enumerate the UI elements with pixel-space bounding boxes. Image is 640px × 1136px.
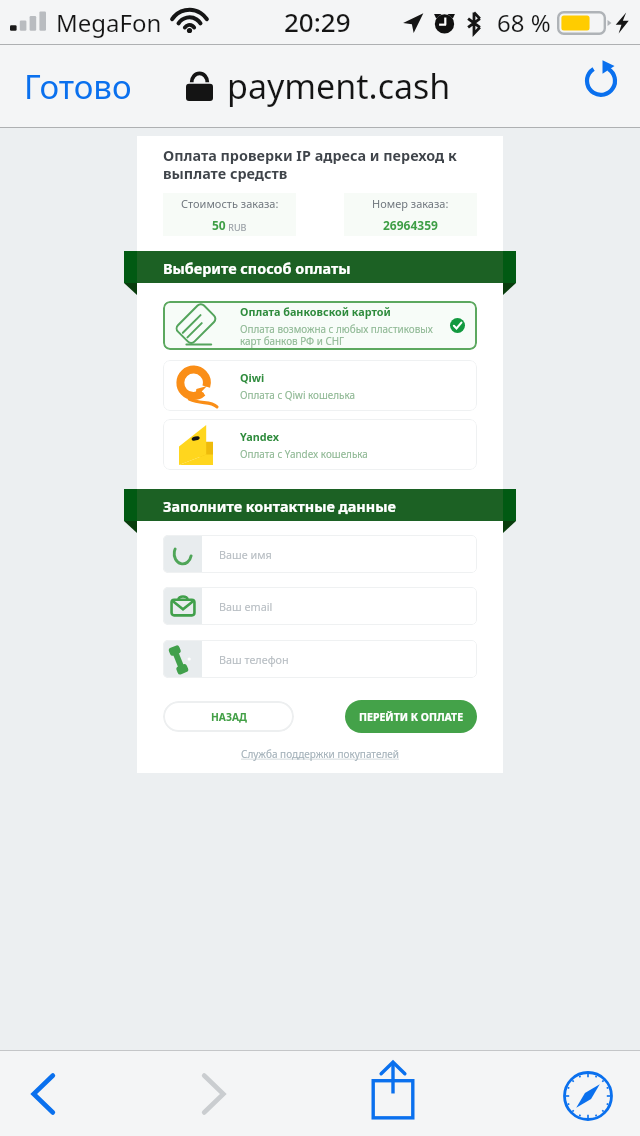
staticText: Оплата возможна с любых пластиковых карт… (240, 322, 433, 348)
staticText: Стоимость заказа: (181, 196, 279, 211)
staticText: Yandex (240, 429, 279, 444)
button[interactable]: Reload (567, 51, 640, 107)
staticText: MegaFon (56, 6, 162, 39)
button[interactable]: Служба поддержки покупателей (137, 745, 503, 763)
staticText: Номер заказа: (372, 196, 449, 211)
button[interactable]: Share (358, 1054, 428, 1126)
staticText: Ваше имя (219, 547, 272, 562)
staticText: 50 (212, 217, 226, 233)
staticText: 26964359 (383, 217, 438, 233)
button[interactable]: Ваш email (163, 587, 477, 625)
staticText: ПЕРЕЙТИ К ОПЛАТЕ (359, 710, 464, 724)
button[interactable]: Qiwi (163, 360, 477, 411)
button[interactable]: Yandex (163, 419, 477, 470)
button[interactable]: Ваш телефон (163, 640, 477, 678)
staticText: Служба поддержки покупателей (241, 747, 399, 761)
staticText: Ваш email (219, 599, 273, 614)
staticText: Оплата проверки IP адреса и переход к вы… (163, 146, 463, 183)
button[interactable]: ПЕРЕЙТИ К ОПЛАТЕ (345, 700, 477, 733)
staticText: Заполните контактные данные (163, 497, 396, 517)
button[interactable]: payment.cash (166, 55, 471, 117)
staticText: Оплата с Qiwi кошелька (240, 388, 355, 401)
button[interactable]: Ваше имя (163, 535, 477, 573)
button[interactable]: Bookmarks (553, 1064, 623, 1128)
staticText: Оплата с Yandex кошелька (240, 447, 368, 460)
staticText: НАЗАД (211, 710, 247, 724)
staticText: Готово (24, 64, 132, 109)
staticText: RUB (226, 221, 247, 233)
staticText: Qiwi (240, 370, 265, 385)
button[interactable]: Оплата банковской картой (163, 301, 477, 350)
button[interactable]: Готово (0, 54, 156, 119)
staticText: 20:29 (284, 4, 351, 39)
button[interactable]: НАЗАД (163, 701, 294, 732)
staticText: Ваш телефон (219, 652, 289, 667)
staticText: 68 % (497, 6, 551, 39)
staticText: Оплата банковской картой (240, 304, 391, 319)
staticText: Выберите способ оплаты (163, 259, 351, 279)
button[interactable]: Forward (179, 1063, 249, 1125)
button[interactable]: Back (8, 1063, 78, 1125)
staticText: payment.cash (227, 63, 451, 109)
